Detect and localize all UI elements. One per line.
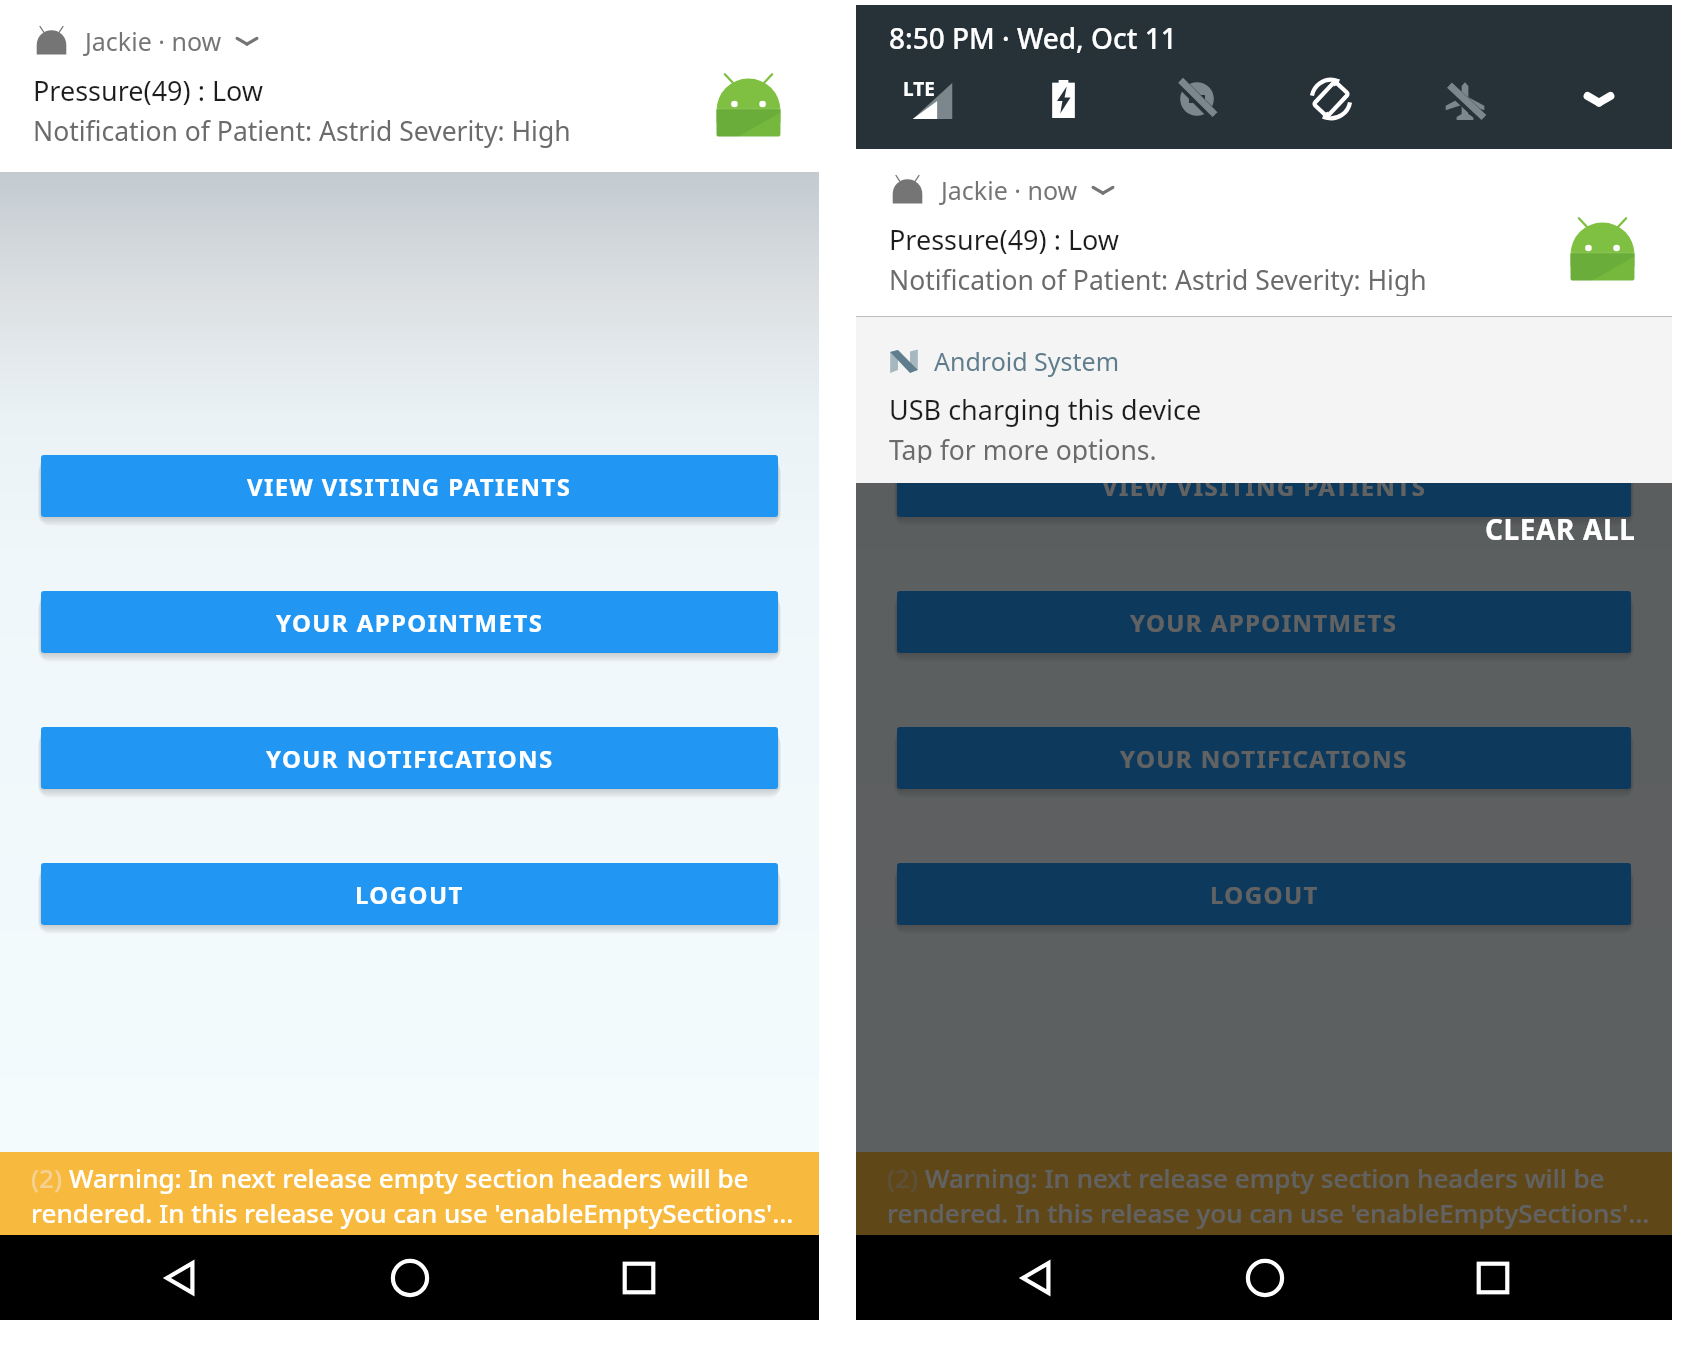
button[interactable]: YOUR NOTIFICATIONS <box>41 727 778 789</box>
staticText: Warning: In next release empty section h… <box>925 1160 1605 1195</box>
staticText: (2) <box>31 1160 69 1195</box>
staticText: rendered. In this release you can use 'e… <box>887 1195 1650 1230</box>
button[interactable]: YOUR APPOINTMETS <box>897 591 1631 653</box>
button[interactable]: Home <box>295 1235 524 1320</box>
button[interactable]: Expand <box>1532 67 1666 131</box>
staticText: Tap for more options. <box>889 432 1157 463</box>
button[interactable]: LOGOUT <box>897 863 1631 925</box>
button[interactable]: Mobile data <box>862 67 996 131</box>
button[interactable]: YOUR NOTIFICATIONS <box>897 727 1631 789</box>
staticText: Android System <box>934 344 1120 378</box>
staticText: YOUR APPOINTMETS <box>1130 606 1398 639</box>
staticText: VIEW VISITING PATIENTS <box>247 470 572 503</box>
staticText: (2) <box>887 1160 925 1195</box>
button[interactable]: Battery <box>996 67 1130 131</box>
staticText: YOUR APPOINTMETS <box>276 606 544 639</box>
button[interactable]: Home <box>1151 1235 1379 1320</box>
staticText: YOUR NOTIFICATIONS <box>1120 742 1408 775</box>
button[interactable]: Android System <box>856 317 1672 483</box>
button[interactable]: (2) <box>856 1152 1672 1235</box>
button[interactable]: Recents <box>524 1235 753 1320</box>
button[interactable]: Back <box>66 1235 295 1320</box>
staticText: LOGOUT <box>355 878 464 911</box>
button[interactable]: Do not disturb <box>1130 67 1264 131</box>
staticText: 8:50 PM · Wed, Oct 11 <box>889 19 1177 57</box>
button[interactable]: LOGOUT <box>41 863 778 925</box>
staticText: VIEW VISITING PATIENTS <box>1102 470 1427 503</box>
staticText: Pressure(49) : Low <box>33 72 264 109</box>
button[interactable]: (2) <box>0 1152 819 1235</box>
button[interactable]: VIEW VISITING PATIENTS <box>41 455 778 517</box>
staticText: Pressure(49) : Low <box>889 221 1120 258</box>
staticText: LTE <box>903 76 935 102</box>
button[interactable]: VIEW VISITING PATIENTS <box>897 455 1631 517</box>
staticText: Jackie · now <box>941 173 1078 207</box>
button[interactable]: Jackie · now <box>0 0 819 172</box>
button[interactable]: Recents <box>1379 1235 1607 1320</box>
staticText: Warning: In next release empty section h… <box>69 1160 749 1195</box>
button[interactable]: CLEAR ALL <box>1485 510 1636 548</box>
button[interactable]: Airplane mode <box>1398 67 1532 131</box>
staticText: USB charging this device <box>889 391 1202 428</box>
staticText: LOGOUT <box>1210 878 1319 911</box>
button[interactable]: Jackie · now <box>856 149 1672 316</box>
button[interactable]: Back <box>922 1235 1151 1320</box>
button[interactable]: YOUR APPOINTMETS <box>41 591 778 653</box>
staticText: YOUR NOTIFICATIONS <box>266 742 554 775</box>
staticText: rendered. In this release you can use 'e… <box>31 1195 794 1230</box>
staticText: Jackie · now <box>85 24 222 58</box>
button[interactable]: Auto rotate <box>1264 67 1398 131</box>
staticText: Notification of Patient: Astrid Severity… <box>33 113 571 149</box>
staticText: Notification of Patient: Astrid Severity… <box>889 262 1427 296</box>
